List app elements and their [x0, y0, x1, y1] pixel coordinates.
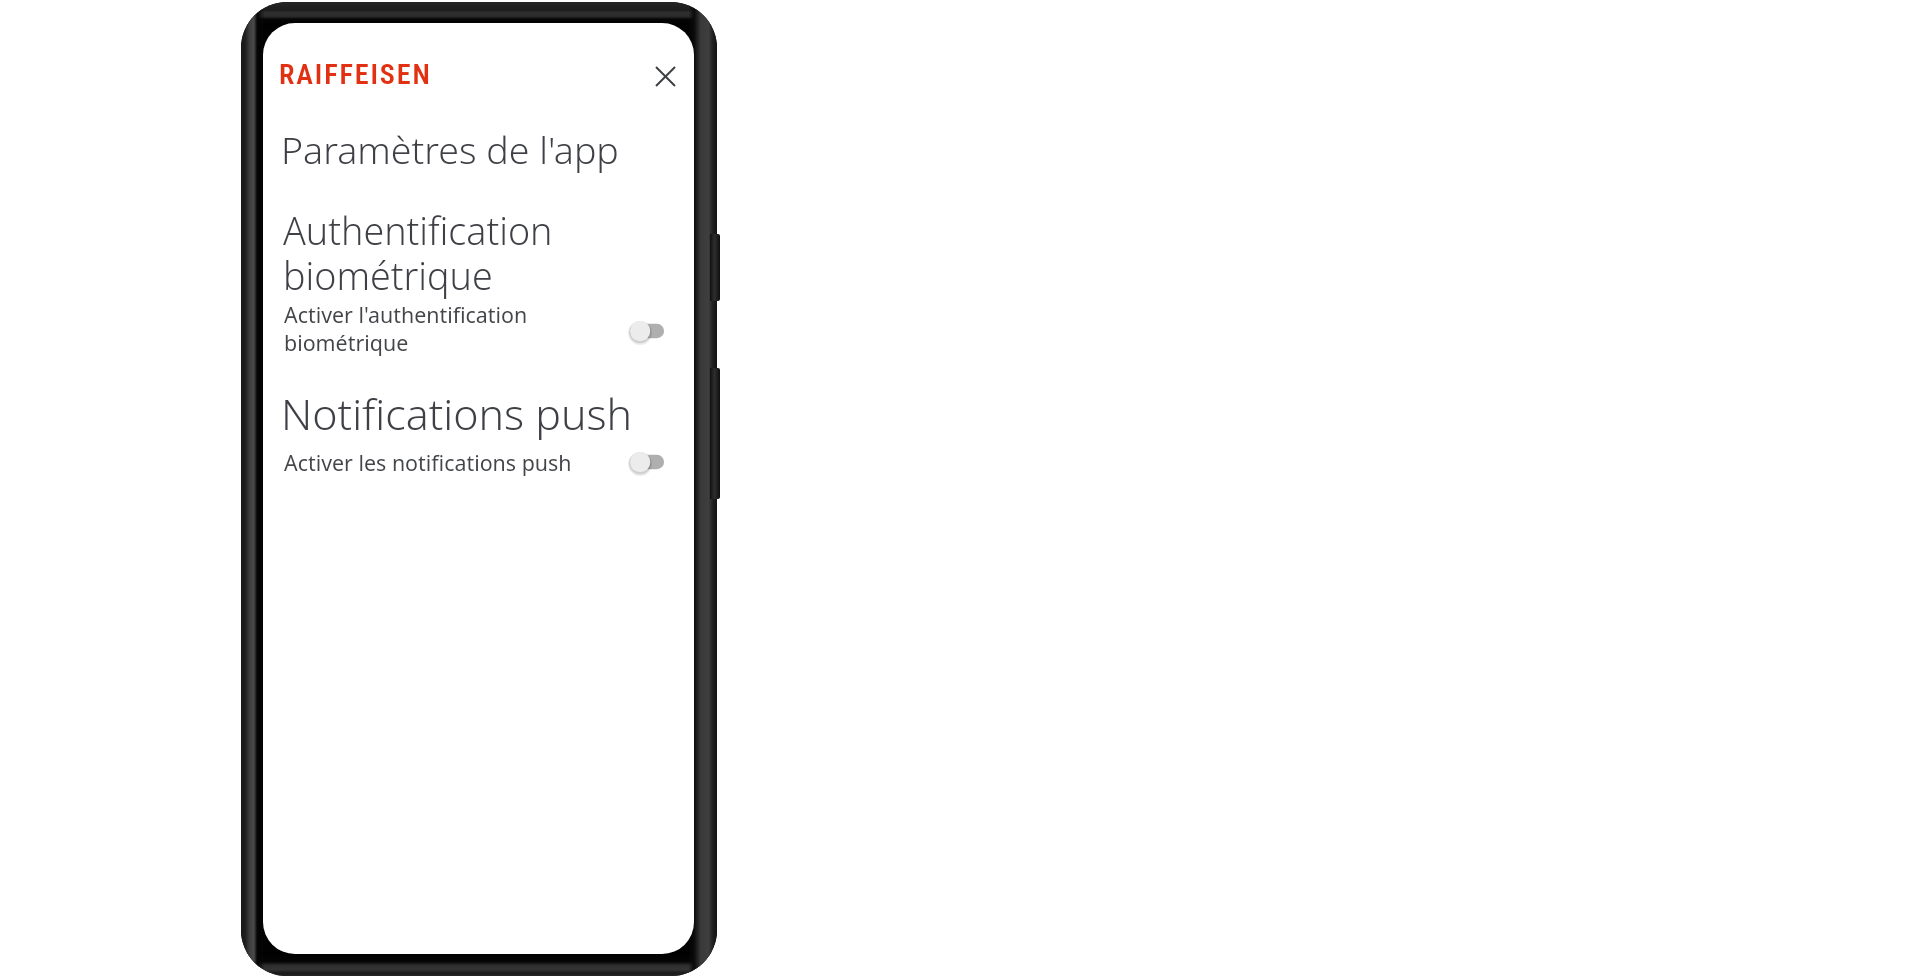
- button[interactable]: Activer les notifications push: [275, 442, 684, 484]
- staticText: Notifications push: [281, 387, 633, 442]
- button[interactable]: Activer l'authentification biométrique: [275, 295, 684, 368]
- staticText: Authentification biométrique: [283, 210, 553, 300]
- staticText: Paramètres de l'app: [281, 126, 619, 174]
- staticText: RAIFFEISEN: [279, 58, 432, 91]
- staticText: Activer les notifications push: [284, 448, 594, 477]
- staticText: Activer l'authentification biométrique: [284, 300, 594, 358]
- button[interactable]: Fermer: [644, 55, 686, 97]
